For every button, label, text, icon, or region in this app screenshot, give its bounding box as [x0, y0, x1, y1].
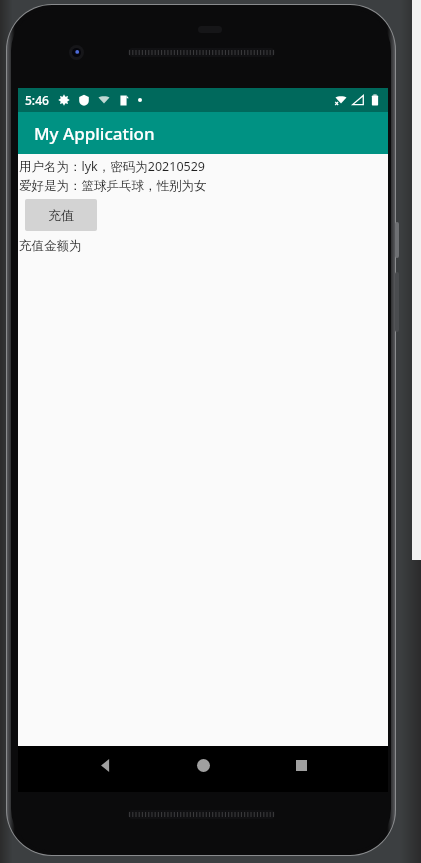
staticText: 用户名为：lyk，密码为20210529: [19, 158, 205, 175]
button[interactable]: Back: [82, 746, 128, 792]
staticText: 充值: [48, 207, 74, 223]
button[interactable]: Home: [180, 746, 226, 792]
button[interactable]: 充值: [25, 199, 97, 231]
button[interactable]: Recent apps: [278, 746, 324, 792]
staticText: My Application: [34, 122, 155, 145]
staticText: 充值金额为: [19, 238, 82, 254]
staticText: 5:46: [25, 92, 49, 108]
staticText: 爱好是为：篮球乒乓球，性别为女: [19, 178, 207, 194]
